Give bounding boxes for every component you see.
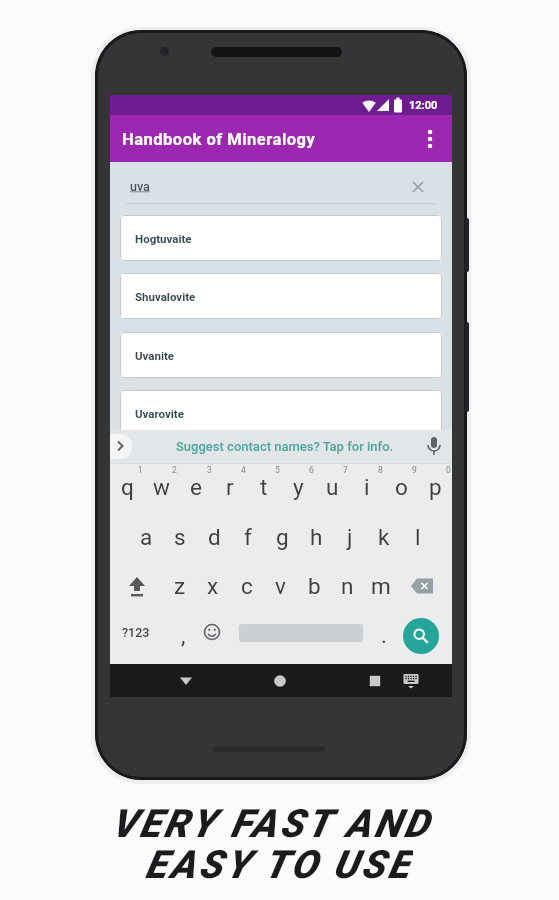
- staticText: j: [347, 524, 353, 550]
- button[interactable]: o: [385, 472, 417, 502]
- button[interactable]: k: [368, 522, 400, 552]
- staticText: o: [395, 474, 408, 500]
- button[interactable]: d: [198, 522, 230, 552]
- staticText: s: [174, 524, 186, 550]
- button[interactable]: e: [180, 472, 212, 502]
- button[interactable]: l: [402, 522, 434, 552]
- staticText: e: [190, 474, 202, 500]
- button[interactable]: u: [316, 472, 348, 502]
- staticText: i: [364, 474, 370, 500]
- button[interactable]: Uvanite: [120, 332, 442, 378]
- staticText: 12:00: [409, 99, 438, 112]
- button[interactable]: i: [351, 472, 383, 502]
- button[interactable]: [110, 430, 452, 463]
- button[interactable]: j: [334, 522, 366, 552]
- staticText: r: [226, 474, 234, 500]
- staticText: z: [174, 573, 186, 599]
- staticText: 2: [172, 465, 177, 475]
- staticText: v: [275, 573, 286, 599]
- button[interactable]: [422, 433, 446, 459]
- staticText: Uvarovite: [135, 407, 184, 420]
- staticText: EASY TO USE: [145, 842, 413, 886]
- staticText: Handbook of Mineralogy: [122, 130, 316, 149]
- button[interactable]: [198, 618, 226, 646]
- staticText: Uvanite: [135, 349, 175, 362]
- button[interactable]: m: [365, 571, 397, 601]
- button[interactable]: v: [264, 571, 296, 601]
- staticText: k: [378, 524, 390, 550]
- button[interactable]: [110, 434, 132, 459]
- button[interactable]: [418, 124, 442, 154]
- staticText: 5: [275, 465, 280, 475]
- staticText: 9: [412, 465, 417, 475]
- staticText: f: [244, 524, 252, 550]
- staticText: y: [293, 474, 304, 500]
- button[interactable]: [263, 666, 297, 696]
- staticText: 8: [378, 465, 383, 475]
- button[interactable]: s: [164, 522, 196, 552]
- staticText: 1: [138, 465, 143, 475]
- button[interactable]: Hogtuvaite: [120, 215, 442, 261]
- staticText: n: [341, 573, 354, 599]
- button[interactable]: [403, 618, 439, 654]
- staticText: ,: [181, 622, 186, 648]
- staticText: c: [241, 573, 253, 599]
- staticText: l: [415, 524, 421, 550]
- button[interactable]: b: [298, 571, 330, 601]
- staticText: w: [153, 474, 170, 500]
- staticText: 4: [241, 465, 246, 475]
- button[interactable]: [169, 666, 203, 696]
- staticText: x: [207, 573, 219, 599]
- staticText: 6: [309, 465, 314, 475]
- button[interactable]: [405, 174, 431, 200]
- staticText: Hogtuvaite: [135, 232, 192, 245]
- staticText: uva: [130, 179, 150, 194]
- button[interactable]: r: [214, 472, 246, 502]
- staticText: 7: [343, 465, 348, 475]
- button[interactable]: .: [374, 622, 394, 648]
- button[interactable]: z: [164, 571, 196, 601]
- button[interactable]: Uvarovite: [120, 390, 442, 436]
- staticText: d: [208, 524, 221, 550]
- button[interactable]: g: [266, 522, 298, 552]
- button[interactable]: w: [145, 472, 177, 502]
- staticText: p: [429, 474, 442, 500]
- staticText: t: [260, 474, 268, 500]
- button[interactable]: p: [419, 472, 451, 502]
- staticText: Shuvalovite: [135, 290, 196, 303]
- staticText: 0: [446, 465, 451, 475]
- button[interactable]: x: [197, 571, 229, 601]
- button[interactable]: h: [300, 522, 332, 552]
- button[interactable]: [358, 666, 392, 696]
- staticText: Suggest contact names? Tap for info.: [176, 439, 394, 454]
- button[interactable]: f: [232, 522, 264, 552]
- button[interactable]: a: [130, 522, 162, 552]
- staticText: ?123: [122, 625, 150, 640]
- staticText: h: [310, 524, 323, 550]
- staticText: g: [276, 524, 289, 550]
- staticText: u: [326, 474, 339, 500]
- staticText: VERY FAST AND: [111, 801, 432, 845]
- button[interactable]: n: [331, 571, 363, 601]
- button[interactable]: c: [231, 571, 263, 601]
- button[interactable]: [396, 666, 426, 696]
- staticText: a: [140, 524, 153, 550]
- staticText: b: [308, 573, 321, 599]
- button[interactable]: t: [248, 472, 280, 502]
- button[interactable]: y: [282, 472, 314, 502]
- button[interactable]: q: [111, 472, 143, 502]
- button[interactable]: ,: [173, 622, 193, 648]
- button[interactable]: [404, 570, 440, 602]
- staticText: 3: [207, 465, 212, 475]
- staticText: m: [371, 573, 391, 599]
- staticText: .: [381, 622, 387, 648]
- button[interactable]: Shuvalovite: [120, 273, 442, 319]
- staticText: q: [121, 474, 134, 500]
- button[interactable]: ?123: [116, 619, 156, 645]
- button[interactable]: [120, 570, 154, 602]
